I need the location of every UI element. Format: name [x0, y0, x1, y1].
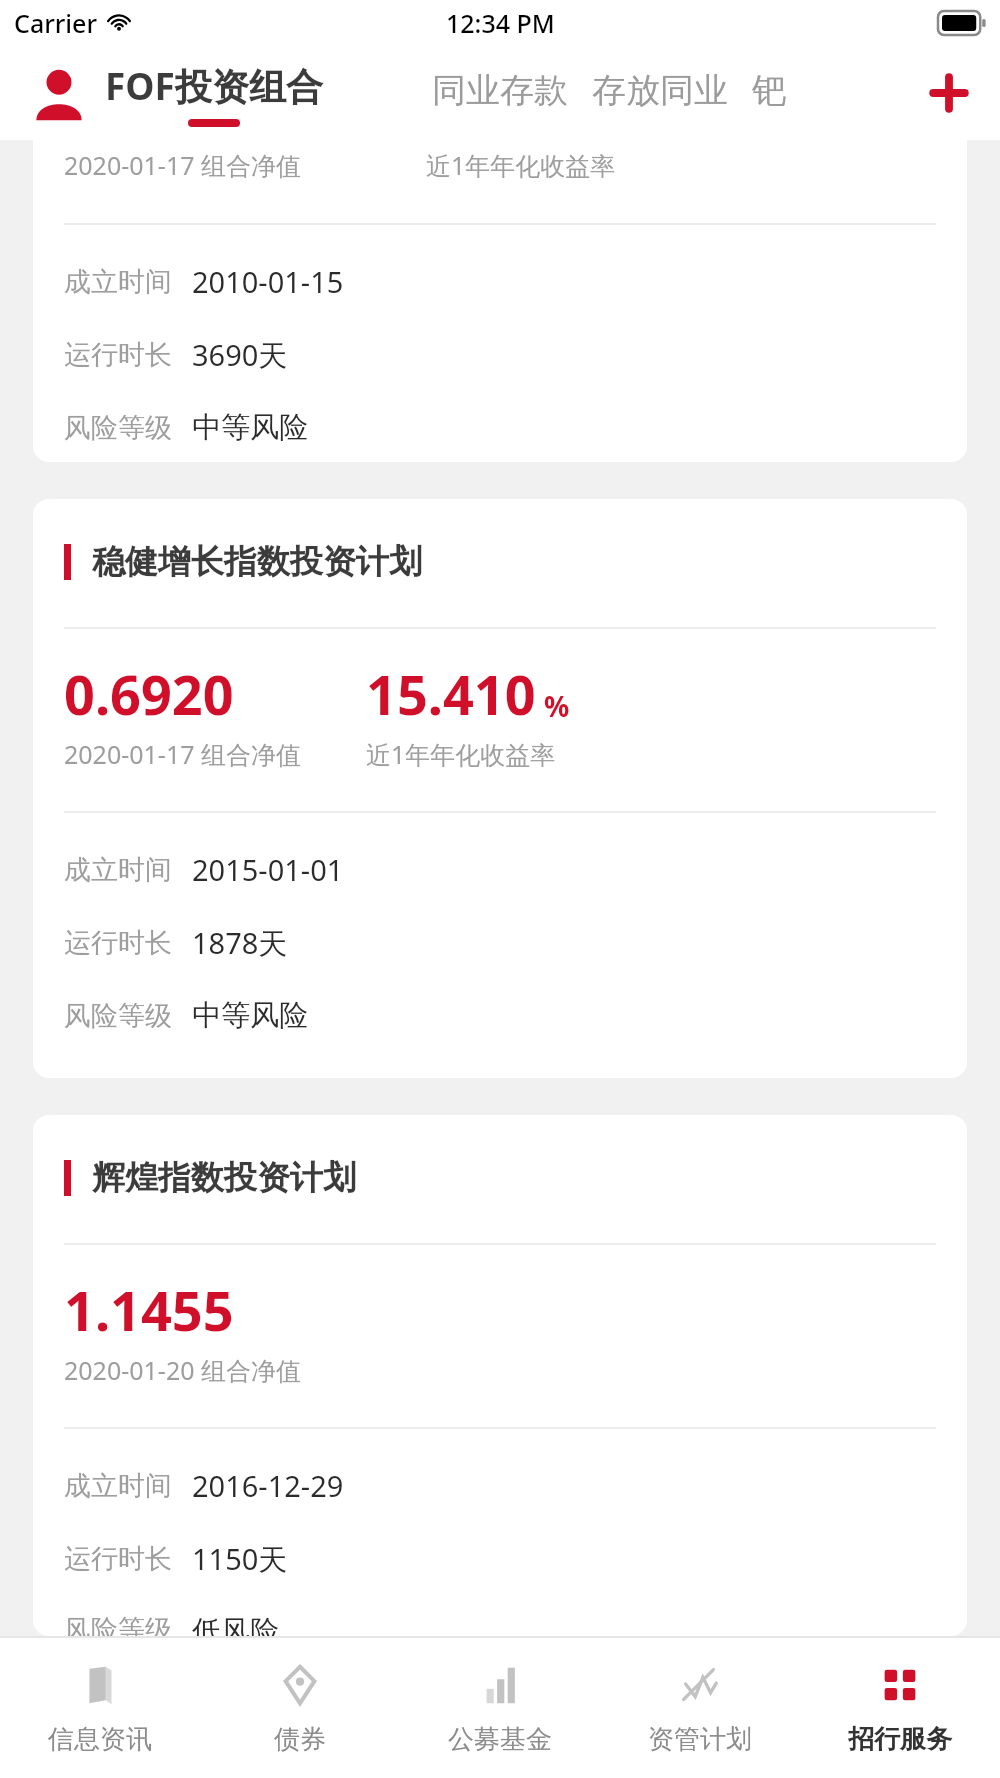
staticText: 2010-01-15 [192, 262, 344, 301]
staticText: 钯 [752, 69, 786, 112]
button[interactable]: 债券 [200, 1638, 400, 1778]
staticText: 公募基金 [448, 1723, 552, 1756]
staticText: 成立时间 [64, 853, 172, 887]
staticText: 中等风险 [192, 409, 308, 446]
staticText: 15.410 [366, 657, 536, 731]
button[interactable]: Profile [30, 64, 88, 122]
staticText: 稳健增长指数投资计划 [92, 541, 422, 583]
staticText: 1878天 [192, 923, 288, 963]
staticText: 资管计划 [648, 1723, 752, 1756]
button[interactable]: 同业存款 [420, 69, 580, 112]
staticText: 风险等级 [64, 999, 172, 1033]
button[interactable]: 资管计划 [600, 1638, 800, 1778]
button[interactable]: 招行服务 [800, 1638, 1000, 1778]
staticText: 2016-12-29 [192, 1466, 344, 1505]
button[interactable]: 2020-01-17 组合净值 [33, 140, 967, 462]
button[interactable]: 稳健增长指数投资计划 [33, 499, 967, 1078]
staticText: 存放同业 [592, 69, 728, 112]
staticText: 2020-01-17 组合净值 [64, 148, 302, 182]
staticText: 债券 [274, 1723, 326, 1756]
staticText: 信息资讯 [48, 1723, 152, 1756]
staticText: 同业存款 [432, 69, 568, 112]
staticText: 中等风险 [192, 997, 308, 1034]
button[interactable]: FOF投资组合 [105, 60, 323, 127]
staticText: 近1年年化收益率 [426, 148, 616, 182]
staticText: % [544, 687, 570, 725]
staticText: 成立时间 [64, 265, 172, 299]
staticText: 运行时长 [64, 1542, 172, 1576]
staticText: 1.1455 [64, 1273, 234, 1347]
staticText: 招行服务 [848, 1723, 952, 1756]
staticText: 成立时间 [64, 1469, 172, 1503]
staticText: 12:34 PM [446, 6, 555, 40]
button[interactable]: 公募基金 [400, 1638, 600, 1778]
staticText: 近1年年化收益率 [366, 737, 556, 771]
staticText: Carrier [14, 6, 98, 40]
staticText: 辉煌指数投资计划 [92, 1157, 356, 1199]
staticText: 运行时长 [64, 338, 172, 372]
button[interactable]: 辉煌指数投资计划 [33, 1115, 967, 1636]
staticText: 运行时长 [64, 926, 172, 960]
button[interactable]: Add [920, 64, 978, 122]
staticText: FOF投资组合 [105, 60, 323, 111]
staticText: 2020-01-17 组合净值 [64, 737, 302, 771]
staticText: 1150天 [192, 1539, 288, 1579]
button[interactable]: 存放同业 [580, 69, 740, 112]
staticText: 2020-01-20 组合净值 [64, 1353, 302, 1387]
staticText: 风险等级 [64, 1613, 172, 1636]
staticText: 风险等级 [64, 411, 172, 445]
staticText: 3690天 [192, 335, 288, 375]
staticText: 0.6920 [64, 657, 234, 731]
button[interactable]: 钯 [740, 69, 798, 112]
staticText: 2015-01-01 [192, 850, 344, 889]
button[interactable]: 信息资讯 [0, 1638, 200, 1778]
staticText: 低风险 [192, 1613, 279, 1636]
